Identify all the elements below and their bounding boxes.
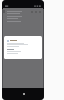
button[interactable] (4, 36, 42, 59)
button[interactable]: Action (30, 10, 34, 14)
button[interactable]: Action (38, 10, 42, 14)
button[interactable]: Action (34, 10, 38, 14)
